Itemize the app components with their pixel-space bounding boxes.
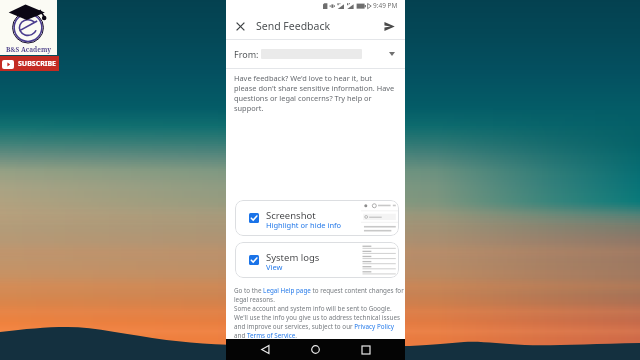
button[interactable]: Home [305,339,326,360]
button[interactable]: Back [255,339,276,360]
button[interactable]: Recent apps [355,339,376,360]
staticText: Go to the Legal Help page to request con… [234,286,405,304]
button[interactable]: SUBSCRIBE [0,56,59,71]
staticText: 9:49 PM [373,1,398,10]
staticText: SUBSCRIBE [18,59,57,69]
staticText: System logs [266,251,320,264]
staticText: View [266,262,283,272]
button[interactable]: From: [226,40,405,68]
staticText: Highlight or hide info [266,220,342,230]
button[interactable]: System logs [235,242,399,278]
staticText: Have feedback? We'd love to hear it, but… [234,73,396,113]
staticText: Screenshot [266,209,316,222]
button[interactable]: Close [228,14,252,38]
button[interactable]: Screenshot [235,200,399,236]
staticText: From: [234,48,259,60]
button[interactable]: Send [377,14,401,38]
staticText: B&S Academy [6,45,52,54]
staticText: Some account and system info will be sen… [234,304,405,340]
staticText: Send Feedback [256,19,331,33]
